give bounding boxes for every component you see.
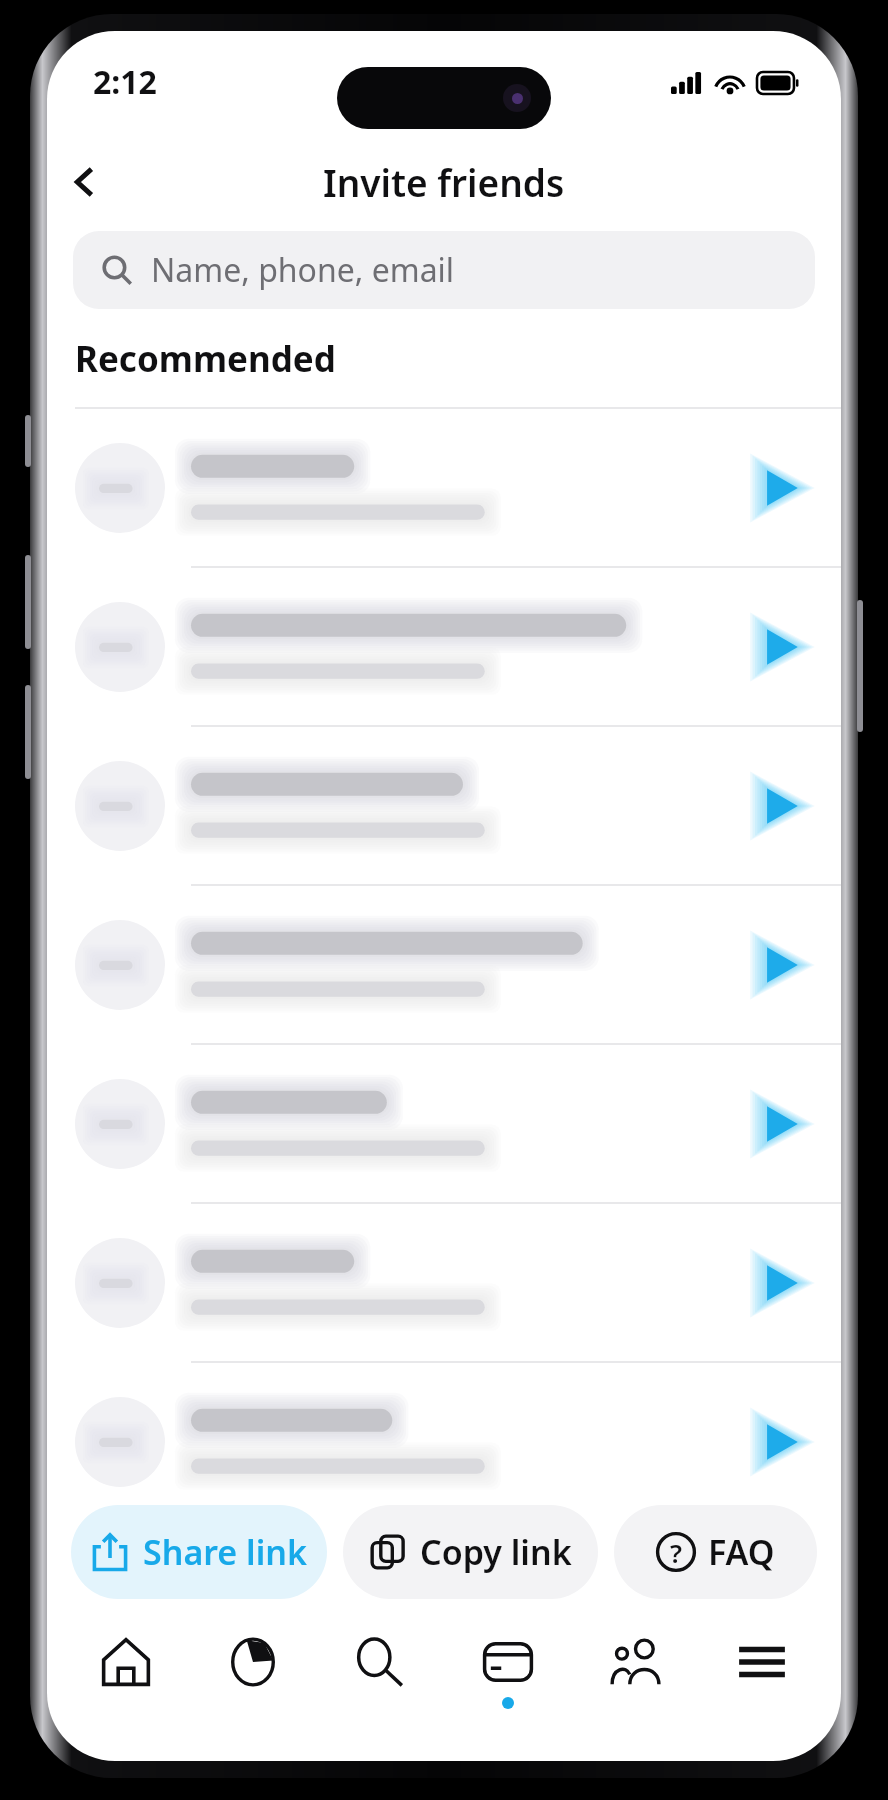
staticText: Invite friends: [323, 157, 565, 207]
button[interactable]: Send invite: [47, 1363, 841, 1520]
button[interactable]: Back: [47, 144, 123, 220]
button[interactable]: Statistics: [190, 1623, 316, 1721]
button[interactable]: Send invite: [747, 614, 813, 680]
staticText: 2:12: [93, 60, 157, 104]
staticText: Recommended: [75, 335, 336, 383]
button[interactable]: Send invite: [747, 932, 813, 998]
button[interactable]: Send invite: [47, 409, 841, 568]
button[interactable]: Search: [317, 1623, 443, 1721]
button[interactable]: Name, phone, email: [73, 231, 815, 309]
button[interactable]: Cards: [445, 1623, 571, 1721]
staticText: Copy link: [420, 1529, 572, 1575]
button[interactable]: Contacts: [572, 1623, 698, 1721]
button[interactable]: Copy link: [343, 1505, 598, 1599]
button[interactable]: Send invite: [47, 1204, 841, 1363]
button[interactable]: Home: [63, 1623, 189, 1721]
button[interactable]: Send invite: [47, 568, 841, 727]
staticText: Share link: [143, 1529, 308, 1575]
button[interactable]: Send invite: [747, 1091, 813, 1157]
button[interactable]: Send invite: [47, 886, 841, 1045]
button[interactable]: Send invite: [747, 1409, 813, 1475]
button[interactable]: Share link: [71, 1505, 327, 1599]
staticText: FAQ: [708, 1529, 775, 1575]
button[interactable]: Send invite: [47, 1045, 841, 1204]
staticText: Name, phone, email: [151, 248, 455, 292]
button[interactable]: Send invite: [747, 773, 813, 839]
button[interactable]: Send invite: [747, 1250, 813, 1316]
button[interactable]: ?: [614, 1505, 817, 1599]
button[interactable]: Send invite: [47, 727, 841, 886]
button[interactable]: Send invite: [747, 455, 813, 521]
button[interactable]: Menu: [699, 1623, 825, 1721]
staticText: ?: [670, 1535, 682, 1570]
